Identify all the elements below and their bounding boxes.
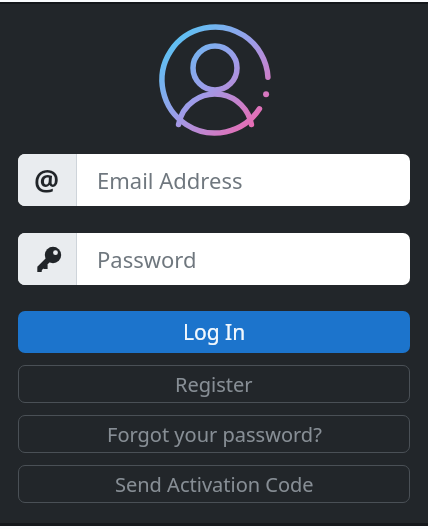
staticText: Email Address (97, 165, 243, 195)
staticText: Send Activation Code (115, 471, 314, 498)
staticText: Register (175, 371, 253, 398)
staticText: @ (34, 161, 60, 199)
staticText: Password (97, 244, 197, 274)
staticText: Log In (183, 318, 246, 347)
staticText: Forgot your password? (107, 421, 322, 448)
